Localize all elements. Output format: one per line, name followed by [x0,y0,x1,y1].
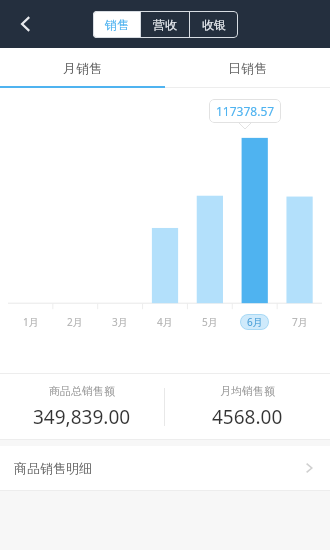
button[interactable]: 收银 [190,11,238,38]
button[interactable]: 5月 [195,314,224,330]
staticText: 4月 [157,315,173,329]
staticText: 日销售 [228,60,267,76]
button[interactable]: 3月 [105,314,134,330]
staticText: 6月 [247,315,263,329]
staticText: 5月 [202,315,218,329]
staticText: 1月 [23,315,39,329]
button[interactable]: 营收 [141,11,189,38]
staticText: 商品销售明细 [14,460,92,476]
staticText: 月均销售额 [220,384,275,398]
button[interactable]: 销售 [93,11,140,38]
button[interactable]: 1月 [16,314,45,330]
button[interactable]: 2月 [60,314,89,330]
staticText: 349,839.00 [33,404,131,430]
staticText: 3月 [112,315,128,329]
button[interactable]: 6月 [240,314,269,330]
staticText: 销售 [105,17,129,32]
staticText: 7月 [292,315,308,329]
button[interactable]: 7月 [285,314,314,330]
staticText: 2月 [67,315,83,329]
button[interactable]: 商品销售明细 [0,446,330,490]
button[interactable]: 商品总销售额 [0,374,164,439]
button[interactable]: 4月 [150,314,179,330]
button[interactable]: 月销售 [0,48,165,88]
staticText: 4568.00 [212,404,283,430]
button[interactable]: Back [6,4,46,44]
staticText: 收银 [202,17,226,32]
button[interactable]: 月均销售额 [165,374,330,439]
staticText: 商品总销售额 [49,384,115,398]
staticText: 月销售 [63,60,102,76]
button[interactable]: 日销售 [165,48,330,88]
staticText: 营收 [153,17,177,32]
staticText: 117378.57 [216,103,275,119]
